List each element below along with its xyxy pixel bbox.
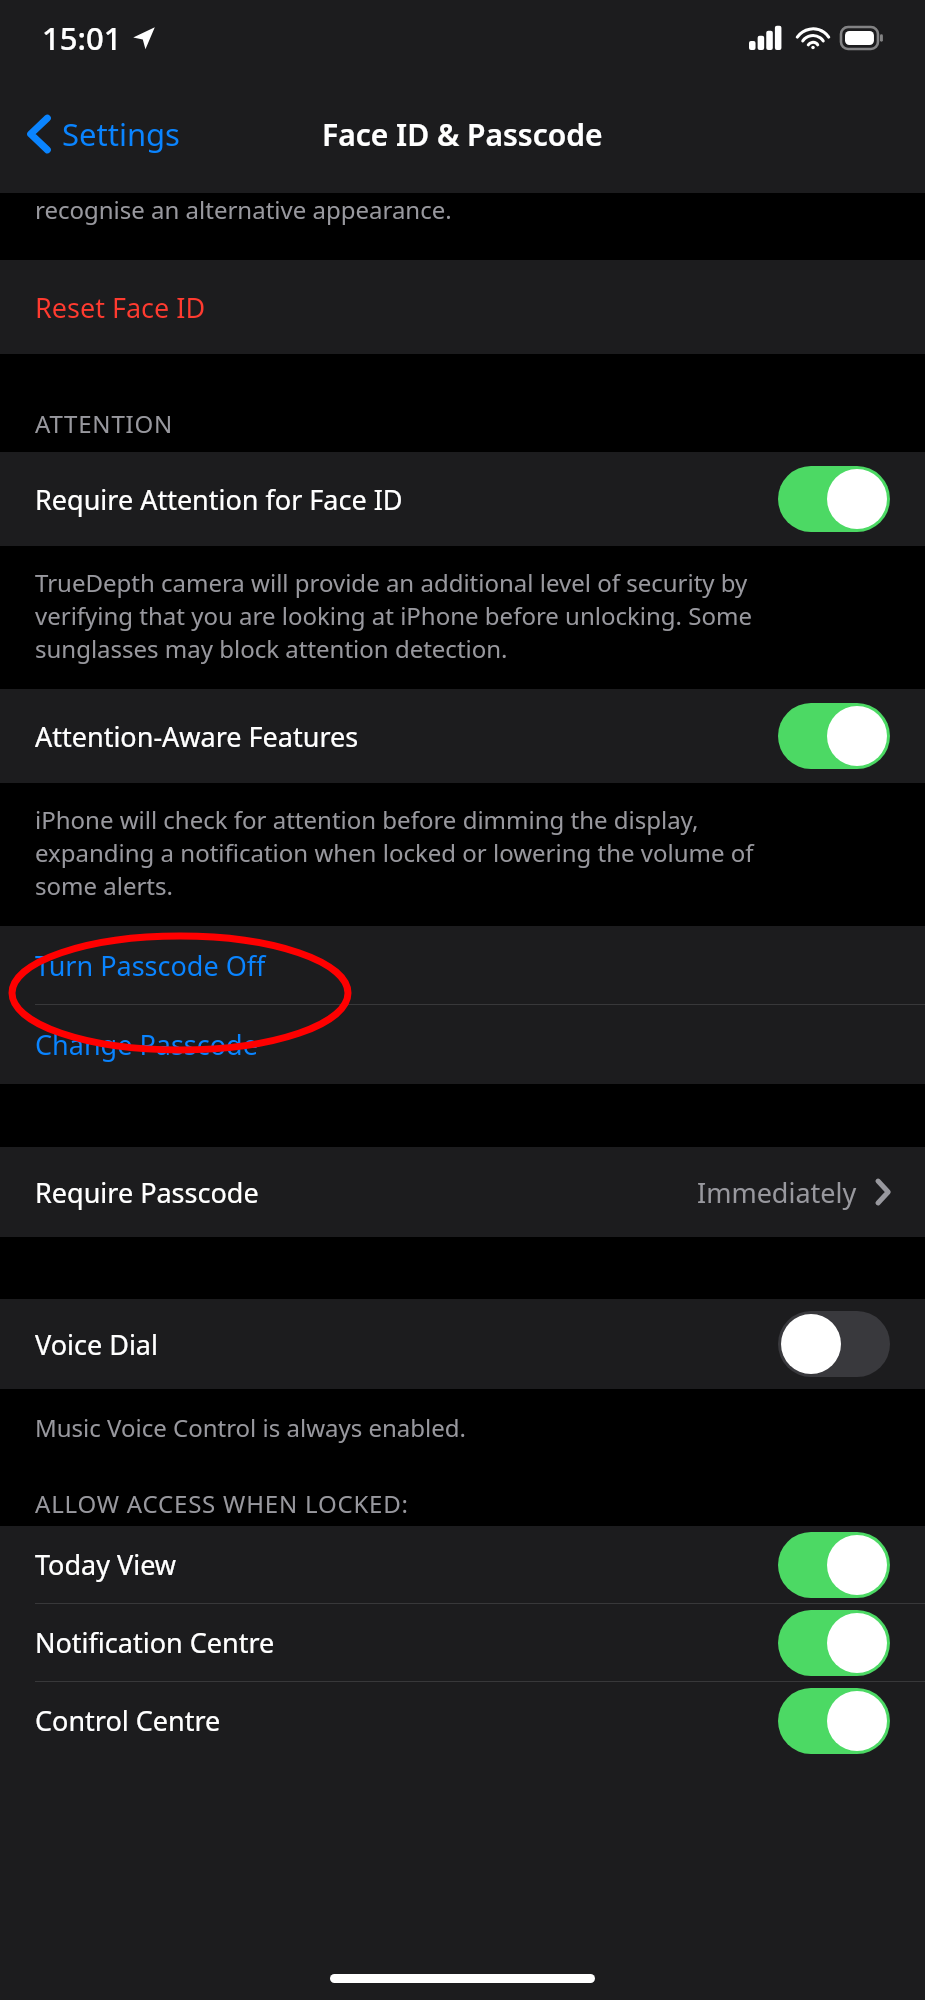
other: Choose — [875, 1179, 890, 1205]
staticText: some alerts. — [35, 869, 173, 902]
button[interactable]: Attention-Aware Features — [0, 689, 925, 783]
button[interactable]: Require Attention for Face ID — [0, 452, 925, 546]
staticText: Control Centre — [35, 1702, 221, 1739]
staticText: Today View — [35, 1546, 177, 1583]
staticText: Notification Centre — [35, 1624, 275, 1661]
button[interactable]: Voice Dial — [0, 1299, 925, 1389]
staticText: Settings — [62, 113, 180, 155]
button[interactable]: Reset Face ID — [0, 260, 925, 354]
staticText: iPhone will check for attention before d… — [35, 803, 699, 836]
button[interactable]: Toggle on — [778, 466, 890, 532]
staticText: verifying that you are looking at iPhone… — [35, 599, 752, 632]
button[interactable]: Toggle on — [778, 1688, 890, 1754]
staticText: Turn Passcode Off — [35, 947, 266, 984]
button[interactable]: Change Passcode — [0, 1005, 925, 1084]
button[interactable]: Back — [22, 103, 186, 165]
button[interactable]: Turn Passcode Off — [0, 926, 925, 1004]
staticText: ATTENTION — [35, 407, 174, 440]
staticText: TrueDepth camera will provide an additio… — [35, 566, 748, 599]
button[interactable]: Control Centre — [0, 1682, 925, 1759]
staticText: Reset Face ID — [35, 289, 206, 326]
button[interactable]: Toggle off — [778, 1311, 890, 1377]
button[interactable]: Toggle on — [778, 1610, 890, 1676]
staticText: Require Attention for Face ID — [35, 481, 403, 518]
button[interactable]: Today View — [0, 1526, 925, 1603]
other: Location — [132, 26, 156, 50]
staticText: Immediately — [697, 1174, 857, 1211]
staticText: Face ID & Passcode — [322, 114, 603, 155]
button[interactable]: Toggle on — [778, 703, 890, 769]
staticText: sunglasses may block attention detection… — [35, 632, 508, 665]
staticText: recognise an alternative appearance. — [35, 193, 452, 226]
button[interactable]: Notification Centre — [0, 1604, 925, 1681]
button[interactable]: Toggle on — [778, 1532, 890, 1598]
staticText: Change Passcode — [35, 1026, 258, 1063]
staticText: expanding a notification when locked or … — [35, 836, 754, 869]
staticText: Attention-Aware Features — [35, 718, 359, 755]
staticText: Voice Dial — [35, 1326, 158, 1363]
button[interactable]: Require Passcode — [0, 1147, 925, 1237]
other: Back — [28, 116, 50, 152]
staticText: Music Voice Control is always enabled. — [35, 1411, 466, 1444]
staticText: 15:01 — [42, 17, 122, 59]
staticText: Require Passcode — [35, 1174, 259, 1211]
staticText: ALLOW ACCESS WHEN LOCKED: — [35, 1487, 409, 1520]
